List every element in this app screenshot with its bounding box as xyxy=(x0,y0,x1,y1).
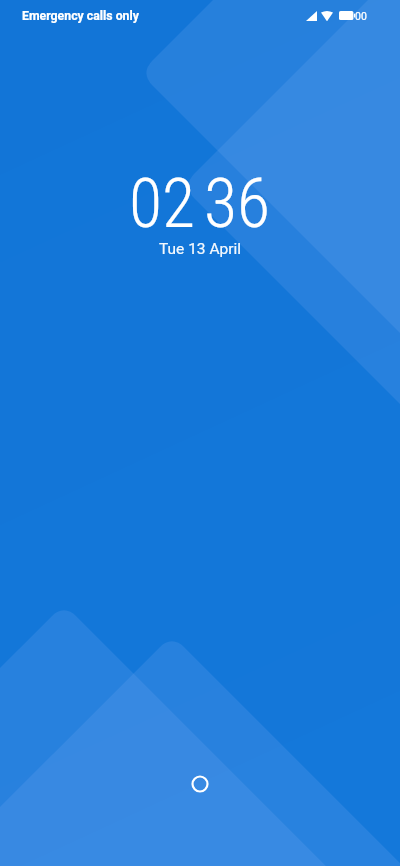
staticText: Emergency calls only xyxy=(22,9,139,23)
button[interactable]: Unlock xyxy=(182,766,218,802)
staticText: 02 xyxy=(129,164,196,244)
staticText: Tue 13 April xyxy=(159,240,242,258)
staticText: 00 xyxy=(355,10,367,22)
staticText: 36 xyxy=(204,164,271,244)
